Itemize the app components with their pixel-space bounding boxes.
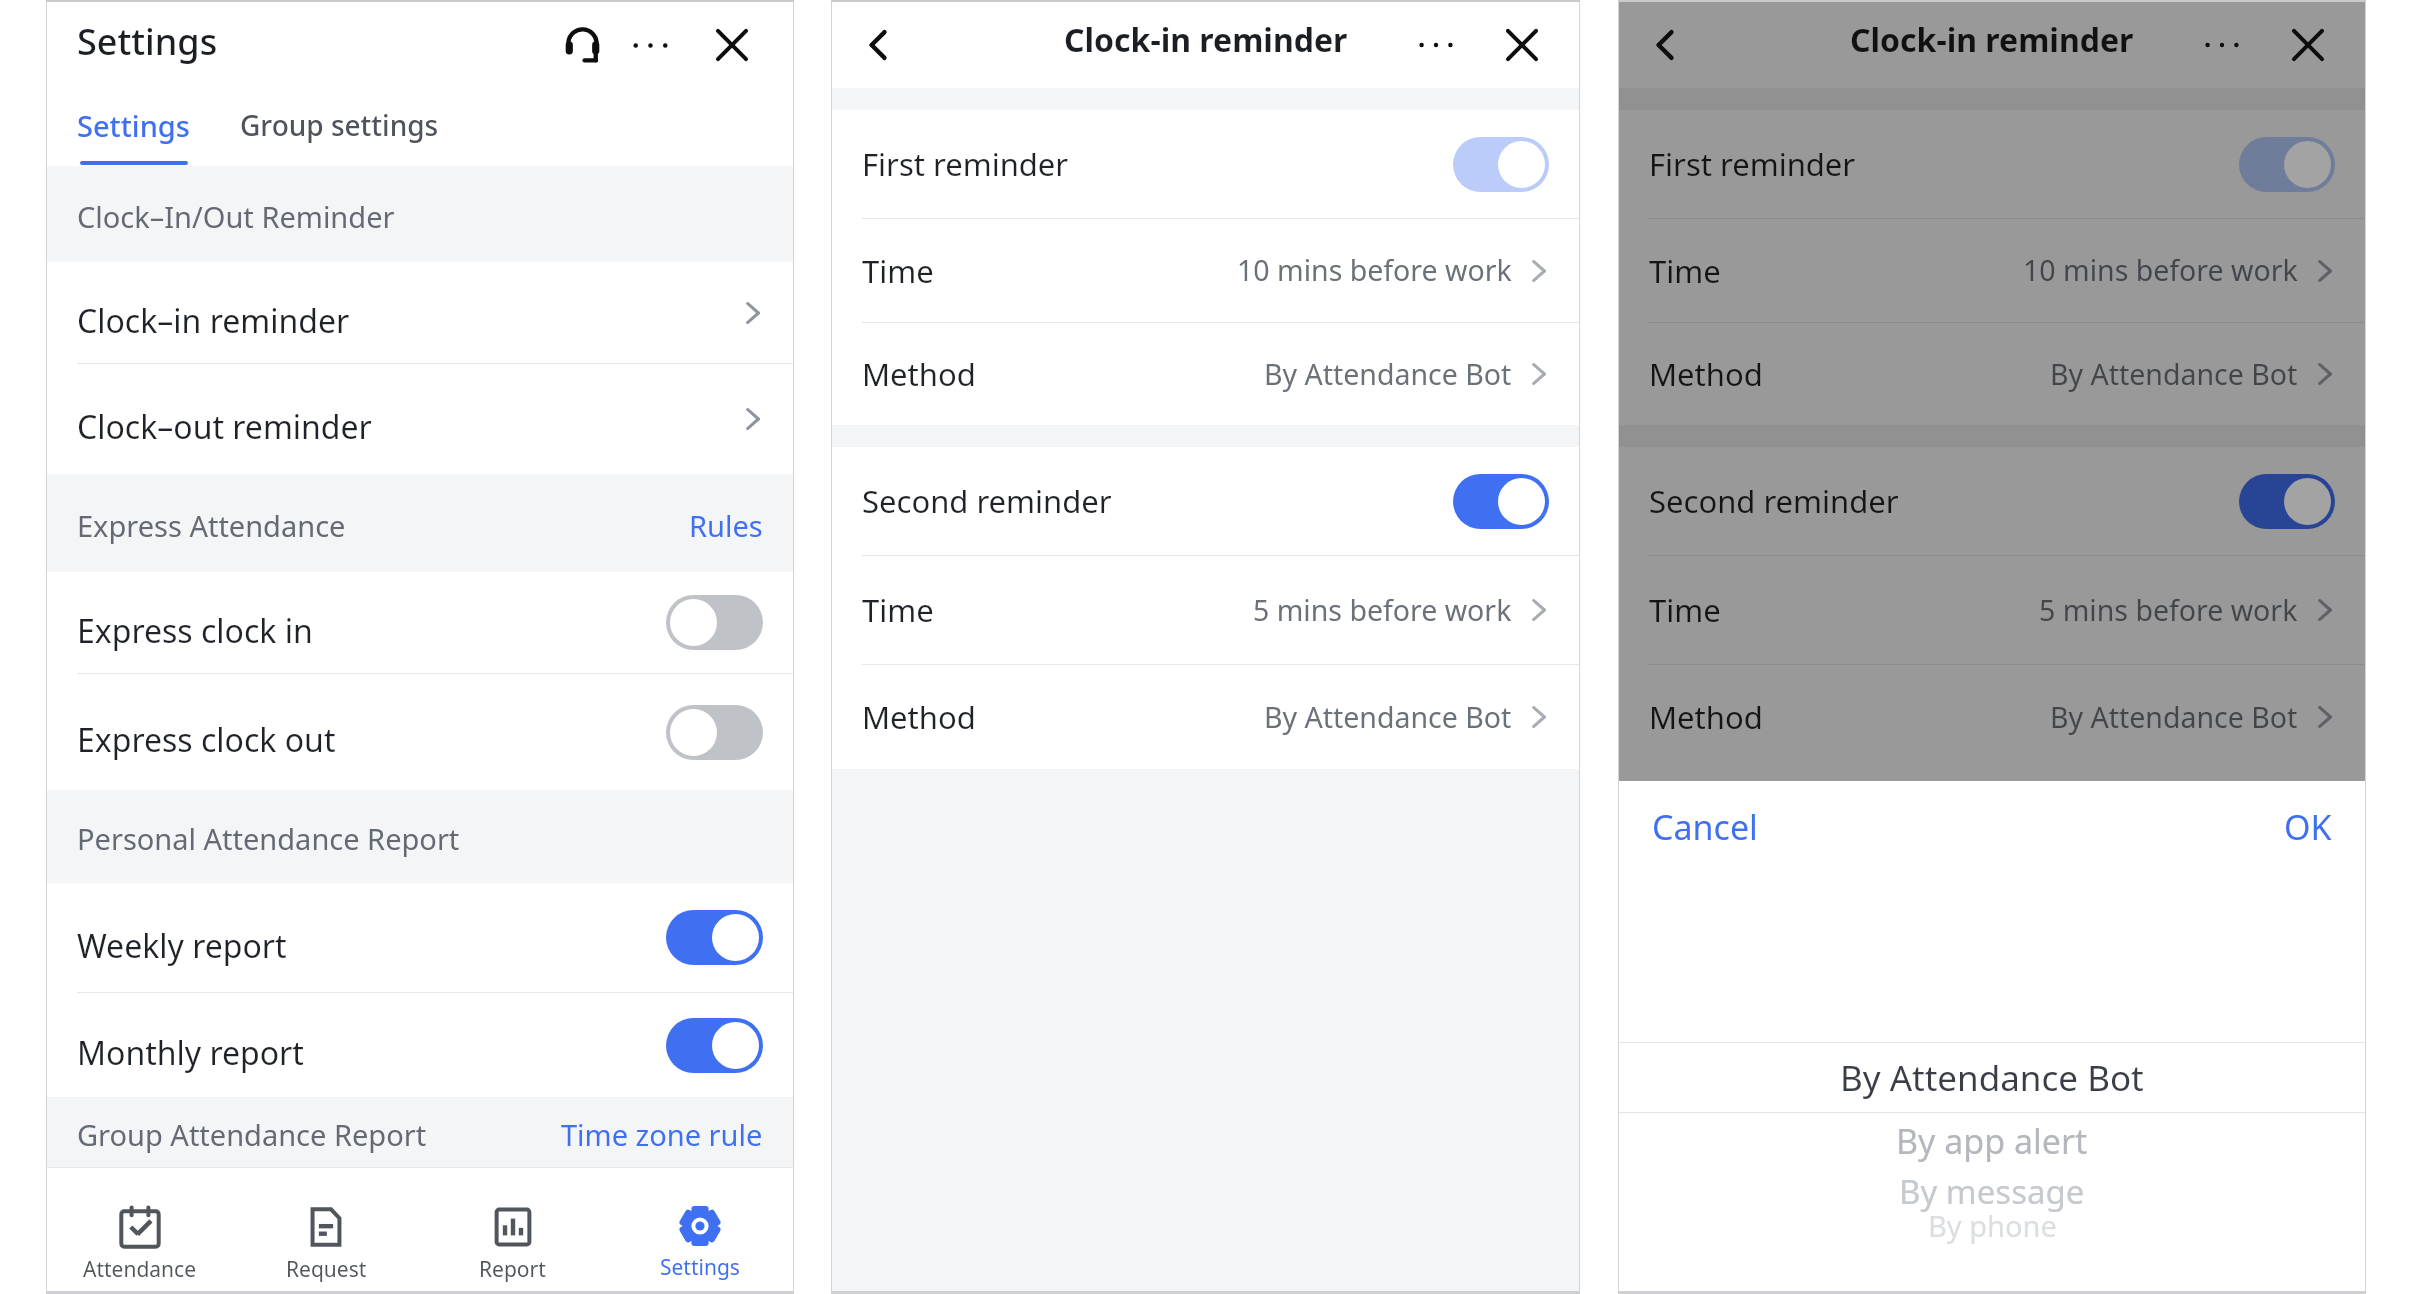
button[interactable]: Support	[548, 11, 616, 79]
staticText: First reminder	[1649, 143, 1856, 185]
staticText: Time	[1649, 589, 1721, 631]
button[interactable]: Close	[1488, 11, 1556, 79]
staticText: Clock-in reminder	[1064, 18, 1348, 62]
staticText: Settings	[660, 1253, 740, 1282]
staticText: By Attendance Bot	[1264, 698, 1512, 737]
button[interactable]: Request	[233, 1168, 419, 1291]
button[interactable]: Method	[832, 323, 1579, 425]
button[interactable]	[666, 1018, 763, 1073]
staticText: Method	[1649, 353, 1763, 395]
staticText: Method	[862, 696, 976, 738]
staticText: By Attendance Bot	[1840, 1054, 2144, 1102]
button[interactable]: By message	[1619, 1165, 2365, 1217]
staticText: Express Attendance	[77, 506, 346, 545]
staticText: First reminder	[862, 143, 1069, 185]
staticText: Clock–In/Out Reminder	[77, 197, 395, 236]
staticText: 5 mins before work	[2039, 591, 2298, 630]
staticText: Time	[1649, 250, 1721, 292]
button[interactable]: Time	[1619, 556, 2365, 664]
button[interactable]: Time	[832, 556, 1579, 664]
button[interactable]: Settings	[77, 88, 190, 165]
button[interactable]: Clock–in reminder	[47, 262, 793, 363]
button[interactable]: Time	[1619, 219, 2365, 322]
button[interactable]: Clock–out reminder	[47, 364, 793, 474]
staticText: Time	[862, 589, 934, 631]
staticText: Second reminder	[1649, 480, 1899, 522]
button[interactable]: More options	[2188, 11, 2256, 79]
staticText: By message	[1899, 1169, 2085, 1214]
staticText: Express clock out	[77, 718, 336, 762]
button[interactable]: Rules	[689, 502, 763, 545]
staticText: By app alert	[1896, 1118, 2088, 1164]
button[interactable]: Time zone rule	[561, 1111, 763, 1154]
staticText: By Attendance Bot	[1264, 355, 1512, 394]
button[interactable]: Back	[848, 14, 910, 76]
staticText: 10 mins before work	[1237, 251, 1512, 290]
staticText: By Attendance Bot	[2050, 698, 2298, 737]
button[interactable]	[2239, 474, 2335, 529]
staticText: Method	[1649, 696, 1763, 738]
staticText: Attendance	[83, 1255, 197, 1284]
staticText: Time zone rule	[561, 1115, 763, 1154]
staticText: Monthly report	[77, 1031, 304, 1075]
staticText: Report	[479, 1255, 546, 1284]
button[interactable]: Cancel	[1652, 804, 1758, 850]
staticText: Group settings	[240, 106, 439, 144]
staticText: Group Attendance Report	[77, 1115, 427, 1154]
button[interactable]	[666, 910, 763, 965]
staticText: Clock–in reminder	[77, 299, 350, 343]
staticText: Express clock in	[77, 609, 313, 653]
staticText: Time	[862, 250, 934, 292]
button[interactable]: Method	[832, 665, 1579, 769]
staticText: Rules	[689, 506, 763, 545]
button[interactable]: By phone	[1619, 1205, 2365, 1245]
button[interactable]: Method	[1619, 323, 2365, 425]
staticText: Method	[862, 353, 976, 395]
button[interactable]: Report	[419, 1168, 606, 1291]
staticText: Second reminder	[862, 480, 1112, 522]
button[interactable]: By app alert	[1619, 1113, 2365, 1168]
button[interactable]: Attendance	[47, 1168, 233, 1291]
staticText: 10 mins before work	[2023, 251, 2298, 290]
button[interactable]: Back	[1635, 14, 1697, 76]
staticText: OK	[2284, 804, 2332, 850]
button[interactable]: OK	[2284, 804, 2332, 850]
button[interactable]	[666, 705, 763, 760]
button[interactable]: Close	[2274, 11, 2342, 79]
button[interactable]: More options	[1402, 11, 1470, 79]
staticText: By Attendance Bot	[2050, 355, 2298, 394]
button[interactable]	[1453, 137, 1549, 192]
button[interactable]: Method	[1619, 665, 2365, 769]
button[interactable]: Time	[832, 219, 1579, 322]
button[interactable]: More options	[616, 11, 684, 79]
button[interactable]	[666, 595, 763, 650]
button[interactable]: Settings	[606, 1168, 793, 1291]
staticText: Personal Attendance Report	[77, 819, 460, 858]
button[interactable]: By Attendance Bot	[1619, 1043, 2365, 1112]
staticText: Weekly report	[77, 924, 287, 968]
button[interactable]	[1453, 474, 1549, 529]
button[interactable]: Group settings	[240, 88, 439, 144]
staticText: Request	[286, 1255, 367, 1284]
staticText: Settings	[77, 17, 218, 66]
button[interactable]: Close	[698, 11, 766, 79]
staticText: Clock-in reminder	[1850, 18, 2134, 62]
staticText: By phone	[1928, 1206, 2057, 1245]
staticText: 5 mins before work	[1253, 591, 1512, 630]
staticText: Settings	[77, 106, 190, 145]
staticText: Cancel	[1652, 804, 1758, 850]
staticText: Clock–out reminder	[77, 405, 372, 449]
button[interactable]	[2239, 137, 2335, 192]
